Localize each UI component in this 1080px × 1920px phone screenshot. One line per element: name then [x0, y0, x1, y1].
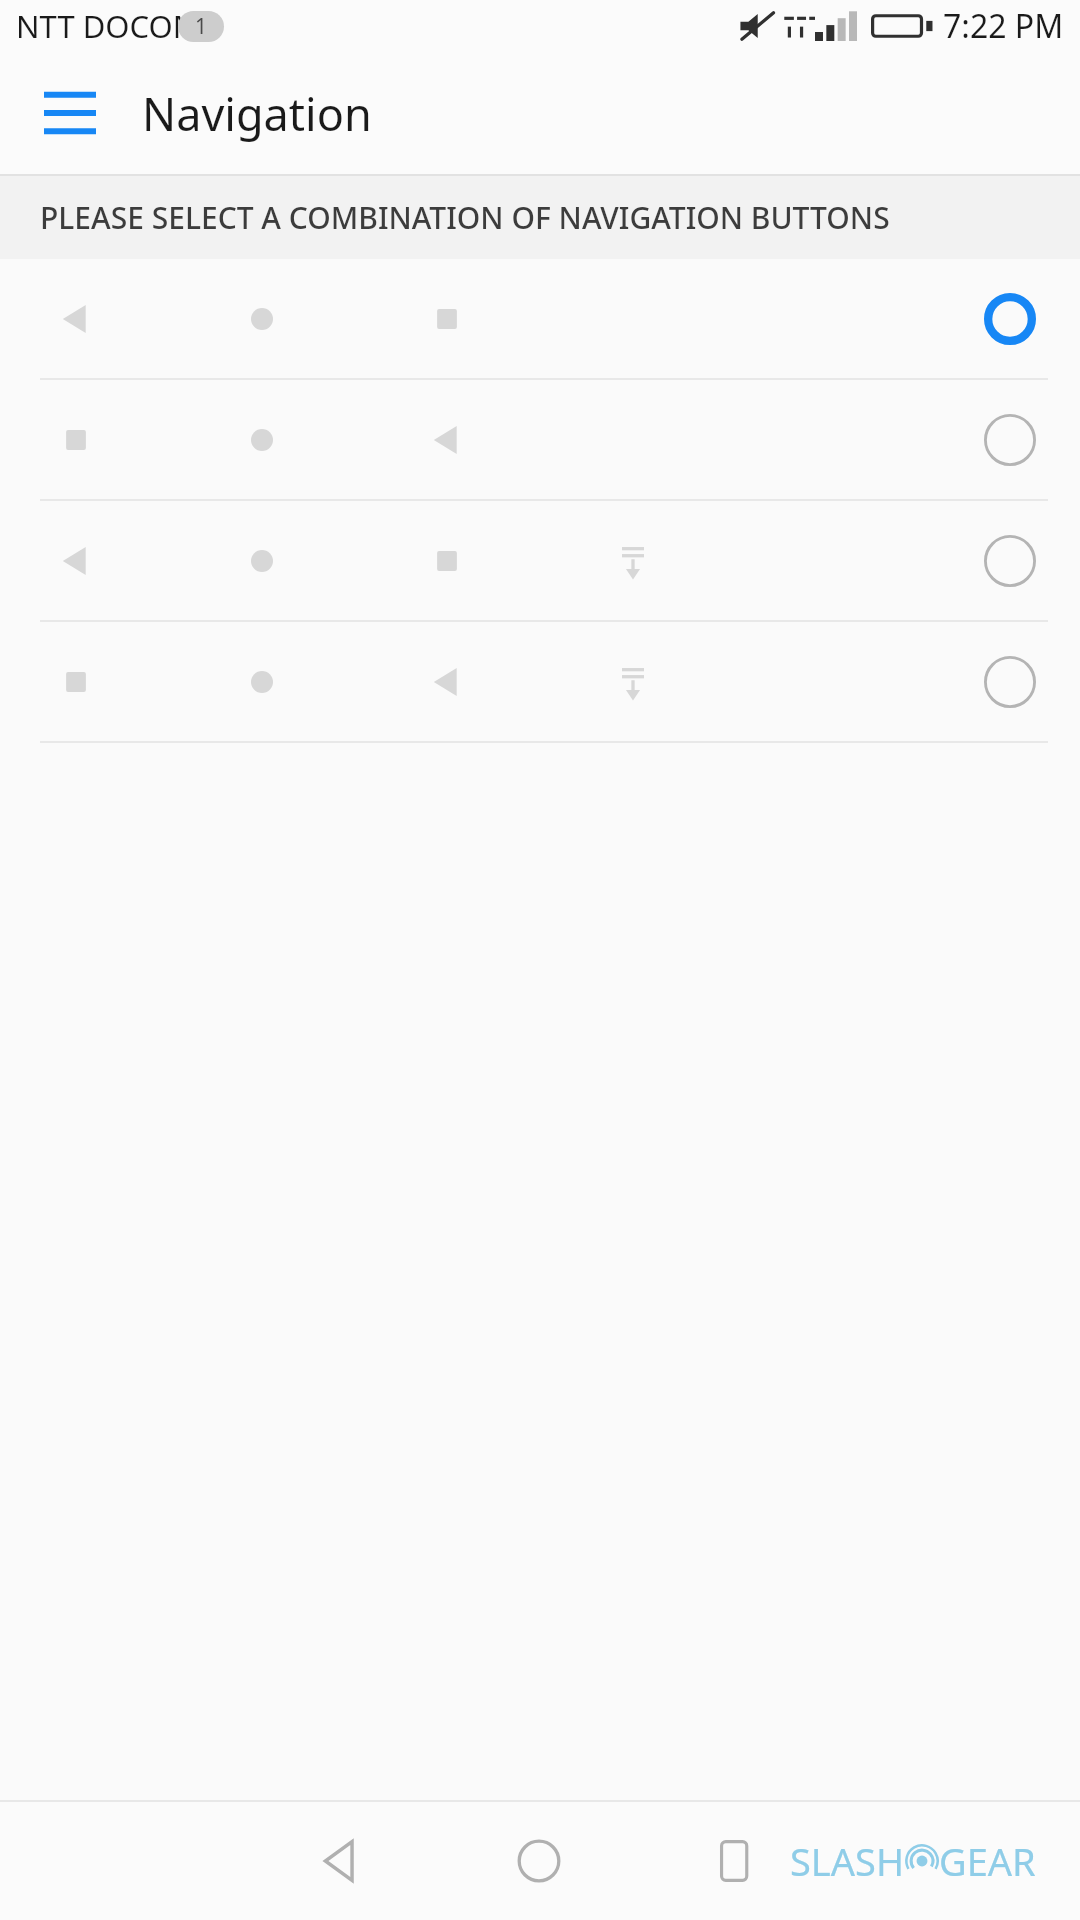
button[interactable]: Navigation button combination	[0, 501, 1080, 620]
staticText: Navigation	[142, 83, 372, 144]
button[interactable]: Home	[480, 1802, 598, 1920]
button[interactable]: Open navigation menu	[22, 65, 118, 161]
staticText: NTT DOCOMO	[16, 5, 226, 47]
staticText: 1	[195, 12, 208, 41]
staticText: GEAR	[939, 1835, 1036, 1887]
button[interactable]: Navigation button combination	[0, 622, 1080, 741]
staticText: 7:22 PM	[943, 4, 1064, 48]
button[interactable]: Recent apps	[676, 1802, 794, 1920]
button[interactable]: Navigation button combination	[0, 380, 1080, 499]
staticText: SLASH	[790, 1835, 905, 1887]
button[interactable]: Navigation button combination, selected	[0, 259, 1080, 378]
button[interactable]: Back	[282, 1802, 400, 1920]
staticText: PLEASE SELECT A COMBINATION OF NAVIGATIO…	[40, 197, 890, 238]
